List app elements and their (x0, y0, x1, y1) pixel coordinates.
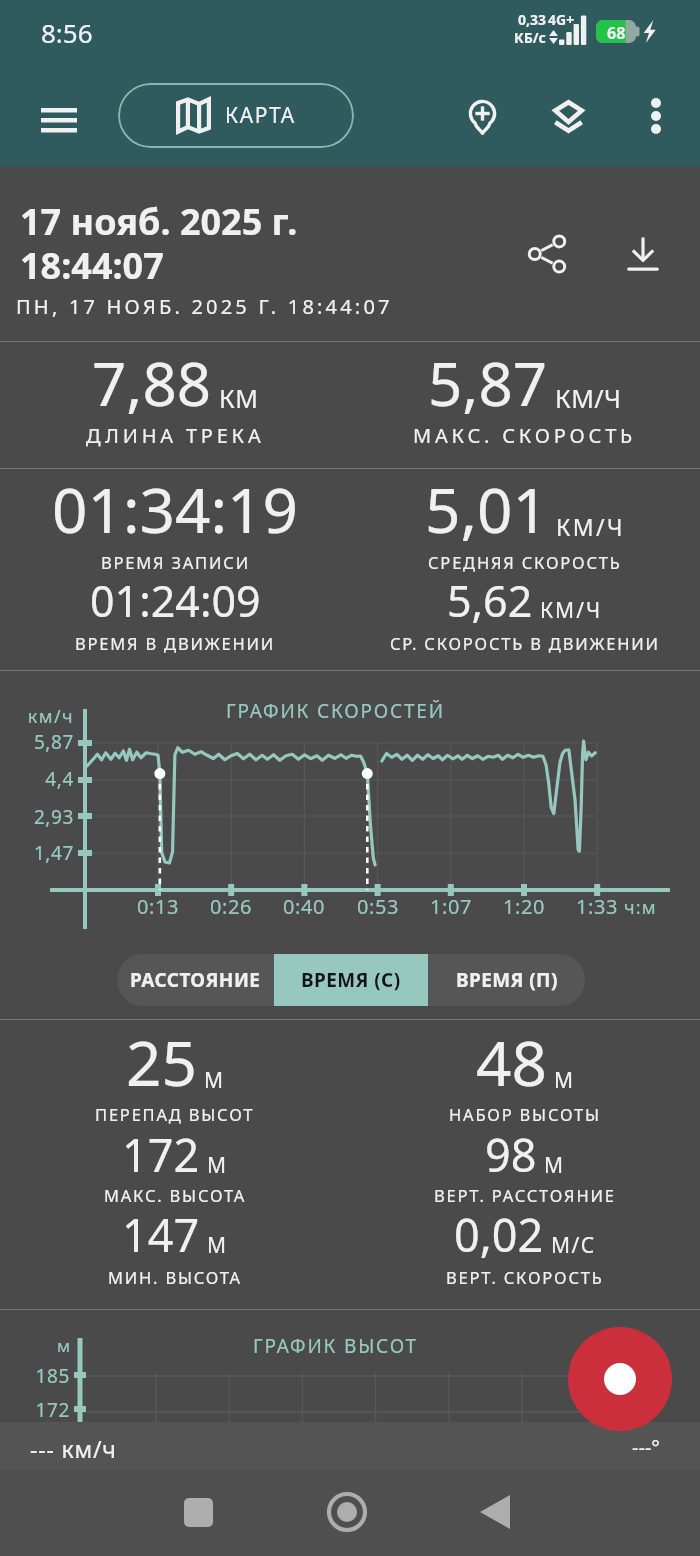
staticText: 98 (485, 1124, 537, 1185)
staticText: НАБОР ВЫСОТЫ (449, 1103, 601, 1125)
staticText: КМ/Ч (555, 381, 622, 415)
staticText: КМ/Ч (540, 596, 603, 625)
staticText: ч:м (624, 895, 657, 920)
staticText: ГРАФИК СКОРОСТЕЙ (226, 698, 445, 724)
staticText: М (204, 1066, 225, 1095)
staticText: 0,02 (454, 1204, 544, 1265)
staticText: 8:56 (41, 15, 93, 50)
button[interactable]: ВРЕМЯ (С) (274, 954, 428, 1006)
staticText: 4,4 (0, 766, 74, 792)
staticText: 1,47 (0, 840, 74, 866)
staticText: КМ (219, 381, 259, 415)
staticText: ГРАФИК ВЫСОТ (253, 1333, 418, 1359)
staticText: М/С (551, 1231, 596, 1260)
staticText: 2,93 (0, 804, 74, 830)
staticText: 5,62 (447, 571, 533, 630)
staticText: 185 (0, 1363, 70, 1389)
staticText: 48 (476, 1020, 547, 1104)
button[interactable]: Download (612, 223, 674, 285)
staticText: 1:07 (415, 893, 487, 920)
staticText: ВРЕМЯ (С) (301, 967, 401, 993)
staticText: М (544, 1151, 565, 1180)
staticText: СРЕДНЯЯ СКОРОСТЬ (428, 551, 622, 573)
staticText: М (554, 1066, 575, 1095)
staticText: СР. СКОРОСТЬ В ДВИЖЕНИИ (390, 632, 660, 654)
staticText: 5,87 (0, 729, 74, 755)
staticText: 18:44:07 (20, 241, 164, 290)
staticText: 01:24:09 (90, 571, 261, 630)
staticText: ПН, 17 НОЯБ. 2025 Г. 18:44:07 (16, 293, 393, 320)
staticText: РАССТОЯНИЕ (130, 967, 261, 993)
button[interactable]: Recent apps (169, 1483, 227, 1541)
staticText: ---° (632, 1434, 660, 1461)
staticText: М (207, 1151, 228, 1180)
staticText: 7,88 (92, 342, 212, 424)
staticText: 1:33 (561, 893, 633, 920)
staticText: 0,33 (518, 10, 547, 29)
staticText: КБ/с (514, 28, 546, 47)
staticText: 0:13 (122, 893, 194, 920)
staticText: 17 нояб. 2025 г. (20, 197, 298, 246)
staticText: ВРЕМЯ В ДВИЖЕНИИ (75, 632, 276, 654)
staticText: ВЕРТ. СКОРОСТЬ (446, 1266, 604, 1288)
staticText: МАКС. СКОРОСТЬ (413, 422, 637, 449)
staticText: км/ч (0, 704, 74, 729)
staticText: М (207, 1231, 228, 1260)
button[interactable]: РАССТОЯНИЕ (117, 954, 274, 1006)
staticText: ВРЕМЯ (П) (456, 967, 558, 993)
staticText: КАРТА (225, 101, 296, 130)
button[interactable]: Layers (539, 87, 597, 145)
staticText: МИН. ВЫСОТА (108, 1266, 242, 1288)
staticText: 0:26 (195, 893, 267, 920)
staticText: 1:20 (488, 893, 560, 920)
staticText: 01:34:19 (52, 467, 299, 551)
staticText: --- км/ч (30, 1433, 117, 1464)
button[interactable]: ВРЕМЯ (П) (428, 954, 585, 1006)
staticText: 172 (0, 1397, 70, 1423)
staticText: ВЕРТ. РАССТОЯНИЕ (434, 1184, 616, 1206)
staticText: 5,87 (428, 342, 548, 424)
button[interactable]: More options (627, 87, 685, 145)
staticText: 0:53 (342, 893, 414, 920)
staticText: МАКС. ВЫСОТА (104, 1184, 247, 1206)
staticText: ВРЕМЯ ЗАПИСИ (101, 551, 250, 573)
staticText: 0:40 (268, 893, 340, 920)
staticText: ПЕРЕПАД ВЫСОТ (95, 1103, 255, 1125)
staticText: 172 (122, 1124, 200, 1185)
button[interactable]: Home (318, 1483, 376, 1541)
button[interactable]: Add waypoint (453, 87, 511, 145)
button[interactable]: КАРТА (118, 83, 354, 148)
staticText: ДЛИНА ТРЕКА (86, 422, 265, 449)
staticText: 4G+ (548, 10, 575, 29)
staticText: 25 (126, 1020, 197, 1104)
staticText: 5,01 (425, 467, 549, 551)
staticText: КМ/Ч (556, 511, 625, 542)
button[interactable]: Share (516, 223, 578, 285)
staticText: 147 (122, 1204, 200, 1265)
button[interactable]: Start recording (568, 1327, 672, 1431)
button[interactable]: Menu (30, 91, 88, 149)
staticText: 68 (607, 22, 626, 44)
button[interactable]: Back (466, 1483, 524, 1541)
staticText: м (0, 1334, 70, 1357)
